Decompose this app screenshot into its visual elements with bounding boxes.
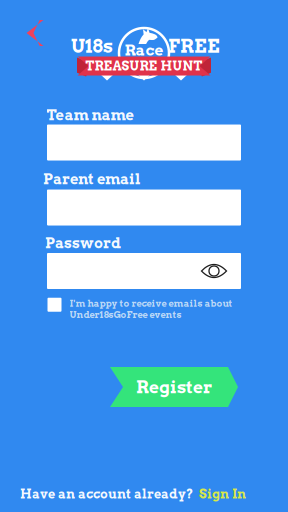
staticText: I'm happy to receive emails about Under1… bbox=[69, 298, 232, 320]
staticText: Parent email bbox=[43, 170, 141, 188]
staticText: U18s bbox=[71, 35, 113, 57]
staticText: Sign In bbox=[199, 486, 246, 502]
button[interactable]: Show password bbox=[197, 256, 231, 286]
staticText: Have an account already? bbox=[20, 486, 193, 502]
button[interactable]: I'm happy to receive emails about Under1… bbox=[47, 298, 232, 320]
staticText: Register bbox=[136, 376, 212, 397]
staticText: FREE bbox=[168, 35, 220, 57]
staticText: Team name bbox=[46, 106, 133, 124]
button[interactable]: Back bbox=[17, 11, 52, 55]
staticText: Password bbox=[45, 234, 121, 252]
button[interactable]: Sign In bbox=[199, 486, 246, 502]
staticText: TREASURE HUNT bbox=[85, 58, 202, 74]
staticText: Race bbox=[124, 41, 163, 59]
button[interactable]: Register bbox=[110, 367, 238, 407]
